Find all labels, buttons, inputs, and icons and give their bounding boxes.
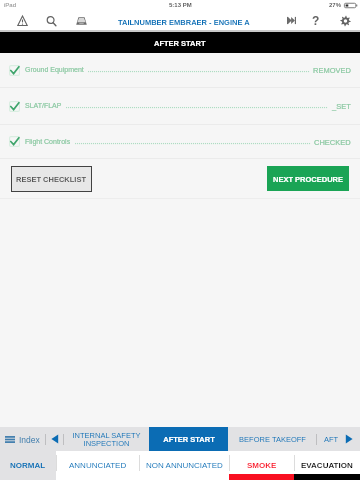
- button[interactable]: Search: [46, 11, 57, 30]
- staticText: CHECKED: [314, 138, 351, 146]
- button[interactable]: Skip to end: [286, 11, 297, 30]
- staticText: Ground Equipment: [25, 66, 84, 74]
- button[interactable]: EVACUATION: [294, 451, 360, 480]
- staticText: TAILNUMBER EMBRAER - ENGINE A: [118, 18, 250, 26]
- button[interactable]: AFTER START: [149, 427, 228, 451]
- button[interactable]: RESET CHECKLIST: [11, 166, 92, 192]
- button[interactable]: Flight Controls: [0, 125, 360, 158]
- staticText: INTERNAL SAFETY INSPECTION: [72, 431, 141, 447]
- button[interactable]: Settings: [340, 11, 351, 30]
- staticText: EVACUATION: [301, 461, 353, 470]
- button[interactable]: SLAT/FLAP: [0, 88, 360, 124]
- staticText: NEXT PROCEDURE: [273, 175, 344, 183]
- staticText: SLAT/FLAP: [25, 102, 62, 110]
- staticText: ?: [312, 14, 320, 27]
- button[interactable]: NORMAL: [0, 451, 56, 480]
- button[interactable]: Warnings: [17, 11, 28, 30]
- staticText: Index: [19, 435, 40, 444]
- staticText: AFT: [324, 435, 339, 443]
- staticText: 5:13 PM: [169, 2, 192, 9]
- staticText: AFTER START: [163, 435, 215, 443]
- button[interactable]: SMOKE: [229, 451, 294, 480]
- button[interactable]: BEFORE TAKEOFF: [228, 427, 316, 451]
- button[interactable]: NEXT PROCEDURE: [267, 166, 349, 191]
- staticText: NON ANNUNCIATED: [146, 461, 223, 470]
- staticText: Flight Controls: [25, 138, 71, 146]
- staticText: SMOKE: [247, 461, 277, 470]
- staticText: NORMAL: [10, 461, 46, 470]
- button[interactable]: Previous procedure: [46, 427, 63, 451]
- button[interactable]: Index: [0, 427, 45, 451]
- staticText: 27%: [329, 2, 342, 9]
- staticText: _SET: [332, 102, 351, 110]
- staticText: iPad: [4, 2, 17, 9]
- staticText: REMOVED: [313, 66, 351, 74]
- staticText: ANNUNCIATED: [69, 461, 127, 470]
- button[interactable]: Print: [76, 11, 87, 30]
- button[interactable]: INTERNAL SAFETY INSPECTION: [64, 427, 149, 451]
- button[interactable]: NON ANNUNCIATED: [139, 451, 229, 480]
- button[interactable]: AFT: [317, 427, 360, 451]
- staticText: RESET CHECKLIST: [16, 175, 87, 183]
- button[interactable]: ANNUNCIATED: [56, 451, 139, 480]
- staticText: AFTER START: [154, 39, 206, 47]
- button[interactable]: Ground Equipment: [0, 53, 360, 87]
- button[interactable]: Help: [310, 11, 321, 30]
- staticText: BEFORE TAKEOFF: [239, 435, 306, 443]
